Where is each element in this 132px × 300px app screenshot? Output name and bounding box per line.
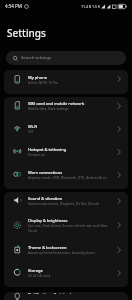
staticText: Mobile data, Data settings	[28, 106, 69, 110]
staticText: Theme & lockscreen	[28, 245, 67, 250]
staticText: 11.4 B 1.5 K	[81, 4, 100, 9]
button[interactable]: Display & brightness	[4, 215, 128, 241]
staticText: Airplane mode, VPN, Bluetooth, OTG, Andr…	[28, 175, 107, 179]
staticText: Settings	[7, 26, 46, 40]
button[interactable]: Sound & vibration	[4, 192, 128, 215]
button[interactable]: Search settings	[6, 51, 126, 65]
button[interactable]: SIM card and mobile network	[4, 97, 128, 120]
staticText: Volume adjustment, Ringtone, Do Not Dist…	[28, 201, 100, 205]
button[interactable]: More connections	[4, 166, 128, 189]
button[interactable]: Notifications & status bar	[4, 292, 128, 300]
staticText: 4:54 PM	[5, 3, 22, 9]
staticText: Hotspot & tethering	[28, 147, 67, 152]
staticText: Notifications & status bar	[28, 292, 77, 294]
staticText: Hotspot on	[28, 152, 46, 156]
staticText: Amazing theme/lockscreen, beautify phone	[28, 250, 96, 254]
button[interactable]: Hotspot & tethering	[4, 143, 128, 166]
button[interactable]: My phone	[4, 70, 128, 94]
staticText: Storage	[28, 268, 43, 273]
staticText: 62.32 GB used	[28, 273, 51, 277]
staticText: Eye care, Dark theme, Screen refresh rat…	[28, 223, 108, 233]
staticText: My phone	[28, 75, 48, 80]
button[interactable]: Theme & lockscreen	[4, 241, 128, 264]
staticText: Wi-Fi	[28, 124, 38, 129]
staticText: More connections	[28, 170, 63, 175]
staticText: Infinix NOTE 10 Pro	[28, 80, 59, 84]
staticText: Search settings	[21, 55, 51, 61]
staticText: Display & brightness	[28, 218, 68, 223]
staticText: Off	[28, 129, 33, 133]
button[interactable]: Wi-Fi	[4, 120, 128, 143]
button[interactable]: Storage	[4, 264, 128, 287]
staticText: SIM card and mobile network	[28, 101, 85, 106]
staticText: Sound & vibration	[28, 196, 63, 201]
